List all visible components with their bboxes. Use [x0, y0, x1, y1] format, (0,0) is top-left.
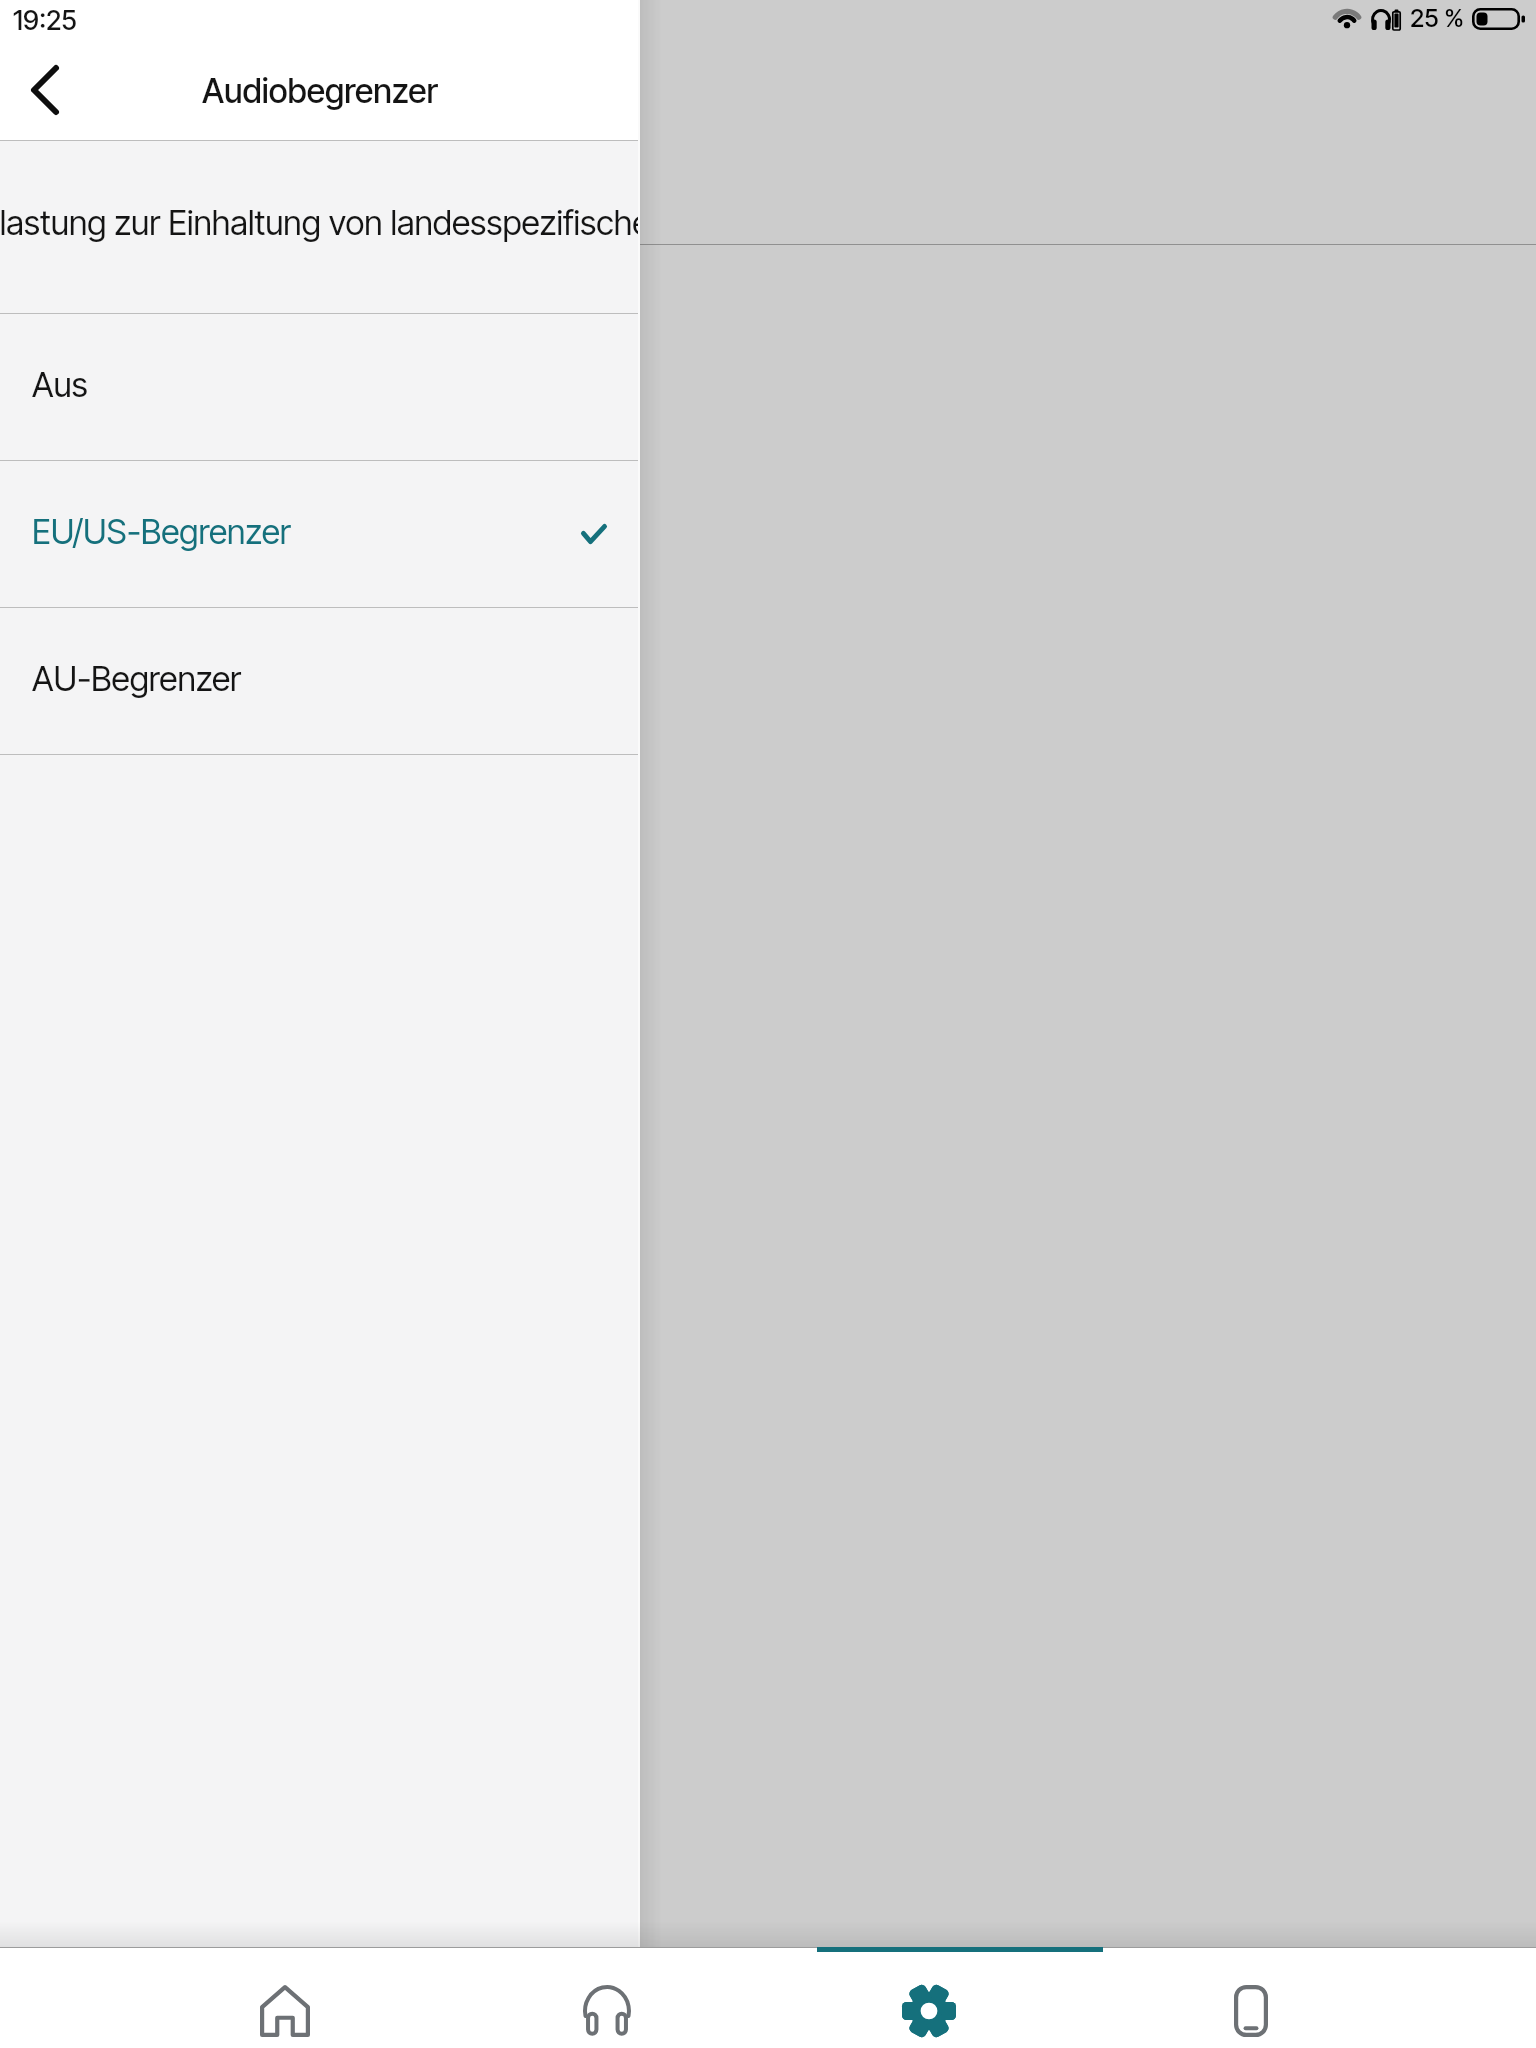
- button[interactable]: Settings: [768, 1985, 1090, 2048]
- button[interactable]: Back: [3, 51, 87, 129]
- button[interactable]: Aus: [0, 314, 640, 460]
- button[interactable]: Headphones: [446, 1985, 768, 2048]
- button[interactable]: EU/US-Begrenzer: [0, 461, 640, 607]
- button[interactable]: Home: [124, 1985, 446, 2048]
- staticText: Begrenzt die Belastung zur Einhaltung vo…: [0, 202, 640, 243]
- staticText: 25 %: [1410, 3, 1464, 33]
- button[interactable]: Device: [1090, 1985, 1412, 2048]
- staticText: Audiobegrenzer: [0, 71, 640, 112]
- staticText: 19:25: [13, 4, 77, 37]
- button[interactable]: AU-Begrenzer: [0, 608, 640, 754]
- staticText: EU/US-Begrenzer: [32, 511, 291, 552]
- staticText: Aus: [32, 364, 88, 405]
- staticText: AU-Begrenzer: [32, 658, 242, 699]
